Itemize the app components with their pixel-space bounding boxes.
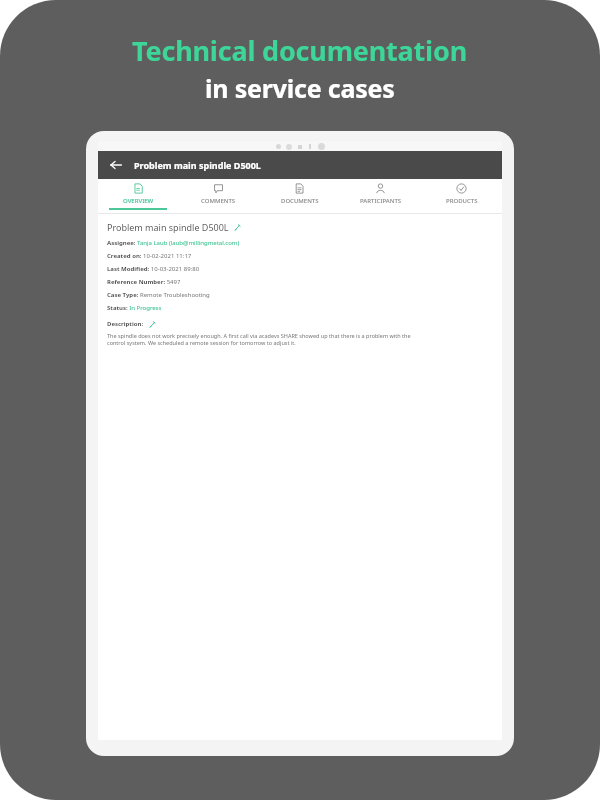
button[interactable]: Edit — [233, 223, 241, 231]
staticText: Case Type: Remote Troubleshooting — [107, 291, 210, 299]
staticText: Problem main spindle D500L — [134, 159, 261, 171]
staticText: Created on: 10-02-2021 11:17 — [107, 252, 192, 260]
staticText: Assignee: Tanja Laub (laub@millingmetal.… — [107, 239, 240, 247]
staticText: in service cases — [205, 71, 395, 105]
staticText: OVERVIEW — [123, 197, 154, 205]
button[interactable]: PARTICIPANTS — [340, 179, 421, 213]
staticText: Problem main spindle D500L — [107, 221, 229, 233]
staticText: Reference Number: 5497 — [107, 278, 181, 286]
button[interactable]: OVERVIEW — [98, 179, 178, 213]
staticText: PRODUCTS — [446, 197, 478, 205]
button[interactable]: Back — [106, 155, 126, 175]
button[interactable]: Edit — [148, 320, 156, 328]
staticText: DOCUMENTS — [281, 197, 319, 205]
staticText: The spindle does not work precisely enou… — [107, 332, 411, 339]
button[interactable]: DOCUMENTS — [259, 179, 340, 213]
staticText: Status: In Progress — [107, 304, 162, 312]
staticText: Last Modified: 10-03-2021 89:80 — [107, 265, 200, 273]
button[interactable]: PRODUCTS — [421, 179, 502, 213]
staticText: Technical documentation — [132, 32, 468, 69]
staticText: COMMENTS — [201, 197, 236, 205]
staticText: PARTICIPANTS — [360, 197, 402, 205]
button[interactable]: COMMENTS — [178, 179, 259, 213]
staticText: control system. We scheduled a remote se… — [107, 339, 296, 346]
staticText: Description: — [107, 320, 144, 328]
